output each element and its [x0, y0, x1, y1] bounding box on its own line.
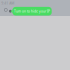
- button[interactable]: Page settings: [9, 10, 12, 13]
- button[interactable]: Reload: [4, 8, 7, 11]
- button[interactable]: Turn on to hide your IP: [11, 7, 52, 15]
- staticText: Turn on to hide your IP: [14, 9, 50, 13]
- staticText: 9:41 AM: [1, 1, 14, 6]
